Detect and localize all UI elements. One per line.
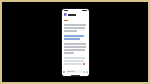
button[interactable]: Send <box>86 71 88 73</box>
button[interactable]: App logo <box>62 12 89 17</box>
button[interactable] <box>66 70 82 73</box>
other: App logo <box>64 13 67 16</box>
button[interactable]: Voice input <box>83 71 85 73</box>
